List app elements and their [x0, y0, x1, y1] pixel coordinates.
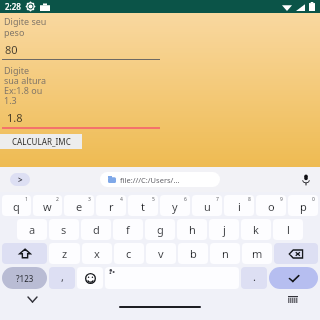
- staticText: Digite sua altura Ex:1.8 ou 1.3: [4, 64, 47, 106]
- staticText: x: [94, 246, 100, 261]
- staticText: ,: [61, 269, 64, 284]
- button[interactable]: w: [33, 195, 62, 216]
- button[interactable]: g: [145, 219, 175, 240]
- staticText: file:///C:/Users/...: [120, 175, 180, 185]
- staticText: 7: [216, 196, 219, 203]
- button[interactable]: Emoji: [77, 267, 103, 289]
- staticText: j: [223, 222, 226, 237]
- staticText: a: [29, 222, 36, 237]
- staticText: 2: [56, 196, 59, 203]
- button[interactable]: CALCULAR_IMC: [0, 134, 82, 149]
- staticText: q: [13, 199, 20, 214]
- staticText: i: [238, 199, 241, 214]
- staticText: ?123: [16, 273, 34, 284]
- button[interactable]: file:///C:/Users/...: [100, 172, 220, 187]
- staticText: m: [252, 246, 263, 261]
- staticText: 5: [152, 196, 155, 203]
- staticText: t: [141, 199, 145, 214]
- button[interactable]: j: [209, 219, 239, 240]
- button[interactable]: s: [49, 219, 79, 240]
- button[interactable]: z: [49, 243, 80, 264]
- staticText: >: [18, 174, 23, 185]
- staticText: Digite seu peso: [4, 15, 47, 38]
- button[interactable]: f: [113, 219, 143, 240]
- staticText: 6: [184, 196, 187, 203]
- staticText: k: [253, 222, 259, 237]
- staticText: l: [287, 222, 290, 237]
- button[interactable]: .: [241, 267, 267, 289]
- button[interactable]: c: [114, 243, 144, 264]
- button[interactable]: t: [128, 195, 158, 216]
- staticText: 1.8: [7, 110, 23, 125]
- staticText: u: [204, 199, 211, 214]
- button[interactable]: n: [210, 243, 240, 264]
- staticText: 80: [5, 42, 18, 57]
- staticText: 0: [312, 196, 315, 203]
- staticText: 9: [280, 196, 283, 203]
- staticText: n: [222, 246, 229, 261]
- button[interactable]: i: [224, 195, 254, 216]
- button[interactable]: k: [241, 219, 271, 240]
- staticText: CALCULAR_IMC: [12, 136, 71, 147]
- button[interactable]: Switch keyboard: [288, 296, 298, 303]
- staticText: p: [300, 199, 307, 214]
- button[interactable]: l: [273, 219, 303, 240]
- button[interactable]: q: [2, 195, 31, 216]
- button[interactable]: ?123: [2, 267, 47, 289]
- staticText: o: [268, 199, 275, 214]
- staticText: c: [126, 246, 132, 261]
- button[interactable]: r: [96, 195, 126, 216]
- button[interactable]: ,: [49, 267, 75, 289]
- button[interactable]: o: [256, 195, 286, 216]
- staticText: h: [189, 222, 196, 237]
- button[interactable]: b: [178, 243, 208, 264]
- staticText: r: [109, 199, 114, 214]
- staticText: 3: [88, 196, 91, 203]
- staticText: 4: [120, 196, 123, 203]
- button[interactable]: x: [82, 243, 112, 264]
- staticText: z: [62, 246, 68, 261]
- button[interactable]: v: [146, 243, 176, 264]
- staticText: f: [126, 222, 130, 237]
- button[interactable]: a: [17, 219, 47, 240]
- button[interactable]: p: [288, 195, 318, 216]
- staticText: s: [61, 222, 67, 237]
- staticText: w: [43, 199, 52, 214]
- staticText: v: [158, 246, 164, 261]
- button[interactable]: Voice search: [302, 174, 310, 186]
- button[interactable]: u: [192, 195, 222, 216]
- button[interactable]: Forward: [10, 173, 30, 186]
- button[interactable]: Backspace: [274, 243, 318, 264]
- staticText: 8: [248, 196, 251, 203]
- staticText: y: [172, 199, 178, 214]
- button[interactable]: Shift: [2, 243, 47, 264]
- staticText: d: [93, 222, 100, 237]
- button[interactable]: m: [242, 243, 272, 264]
- button[interactable]: Enter: [269, 267, 318, 289]
- staticText: 1: [25, 196, 28, 203]
- staticText: b: [190, 246, 197, 261]
- staticText: e: [76, 199, 83, 214]
- button[interactable]: h: [177, 219, 207, 240]
- button[interactable]: y: [160, 195, 190, 216]
- staticText: .: [253, 269, 256, 284]
- button[interactable]: Hide keyboard: [28, 297, 37, 302]
- staticText: 2:28: [5, 1, 21, 12]
- button[interactable]: Space: [105, 267, 239, 289]
- button[interactable]: e: [64, 195, 94, 216]
- button[interactable]: d: [81, 219, 111, 240]
- staticText: g: [157, 222, 164, 237]
